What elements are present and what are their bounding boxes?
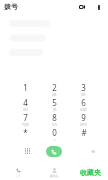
button[interactable]: *	[10, 127, 40, 142]
staticText: 9	[81, 112, 86, 123]
staticText: 6	[81, 97, 86, 108]
button[interactable]: 6	[69, 97, 98, 112]
button[interactable]: 5	[40, 97, 69, 112]
button[interactable]: More options	[93, 1, 105, 13]
staticText: +	[54, 138, 56, 142]
button[interactable]: Call	[46, 146, 62, 157]
button[interactable]: 8	[40, 112, 69, 127]
button[interactable]: 联系人	[36, 164, 72, 180]
staticText: 1	[23, 82, 28, 93]
staticText: PQRS	[22, 123, 29, 127]
button[interactable]: #	[69, 127, 98, 142]
button[interactable]: 通话	[0, 164, 36, 180]
staticText: *	[23, 127, 28, 138]
staticText: 4	[23, 97, 28, 108]
staticText: 联系人	[50, 174, 59, 178]
button[interactable]: 9	[69, 112, 98, 127]
staticText: 7	[23, 112, 28, 123]
staticText: #	[81, 127, 87, 138]
button[interactable]: Backspace	[86, 144, 100, 158]
staticText: 5	[52, 97, 57, 108]
button[interactable]: Video call	[76, 1, 88, 13]
staticText: WXYZ	[80, 123, 87, 127]
staticText: 2	[52, 82, 57, 93]
button[interactable]: Keypad	[20, 144, 34, 158]
button[interactable]: 2	[40, 82, 69, 97]
staticText: 8	[52, 112, 57, 123]
button[interactable]: 1	[10, 82, 40, 97]
staticText: MNO	[80, 108, 87, 112]
staticText: JKL	[53, 108, 57, 112]
staticText: 通话	[15, 174, 21, 178]
button[interactable]: 3	[69, 82, 98, 97]
staticText: 0	[52, 127, 57, 138]
staticText: 拨号	[4, 2, 18, 11]
button[interactable]: 收藏夹	[72, 164, 108, 180]
button[interactable]: 7	[10, 112, 40, 127]
button[interactable]: 4	[10, 97, 40, 112]
staticText: 收藏夹	[80, 168, 101, 177]
staticText: 3	[81, 82, 86, 93]
button[interactable]: 0	[40, 127, 69, 142]
staticText: GHI	[23, 108, 28, 112]
staticText: DEF	[81, 93, 86, 97]
staticText: ABC	[52, 93, 57, 97]
staticText: TUV	[52, 123, 57, 127]
